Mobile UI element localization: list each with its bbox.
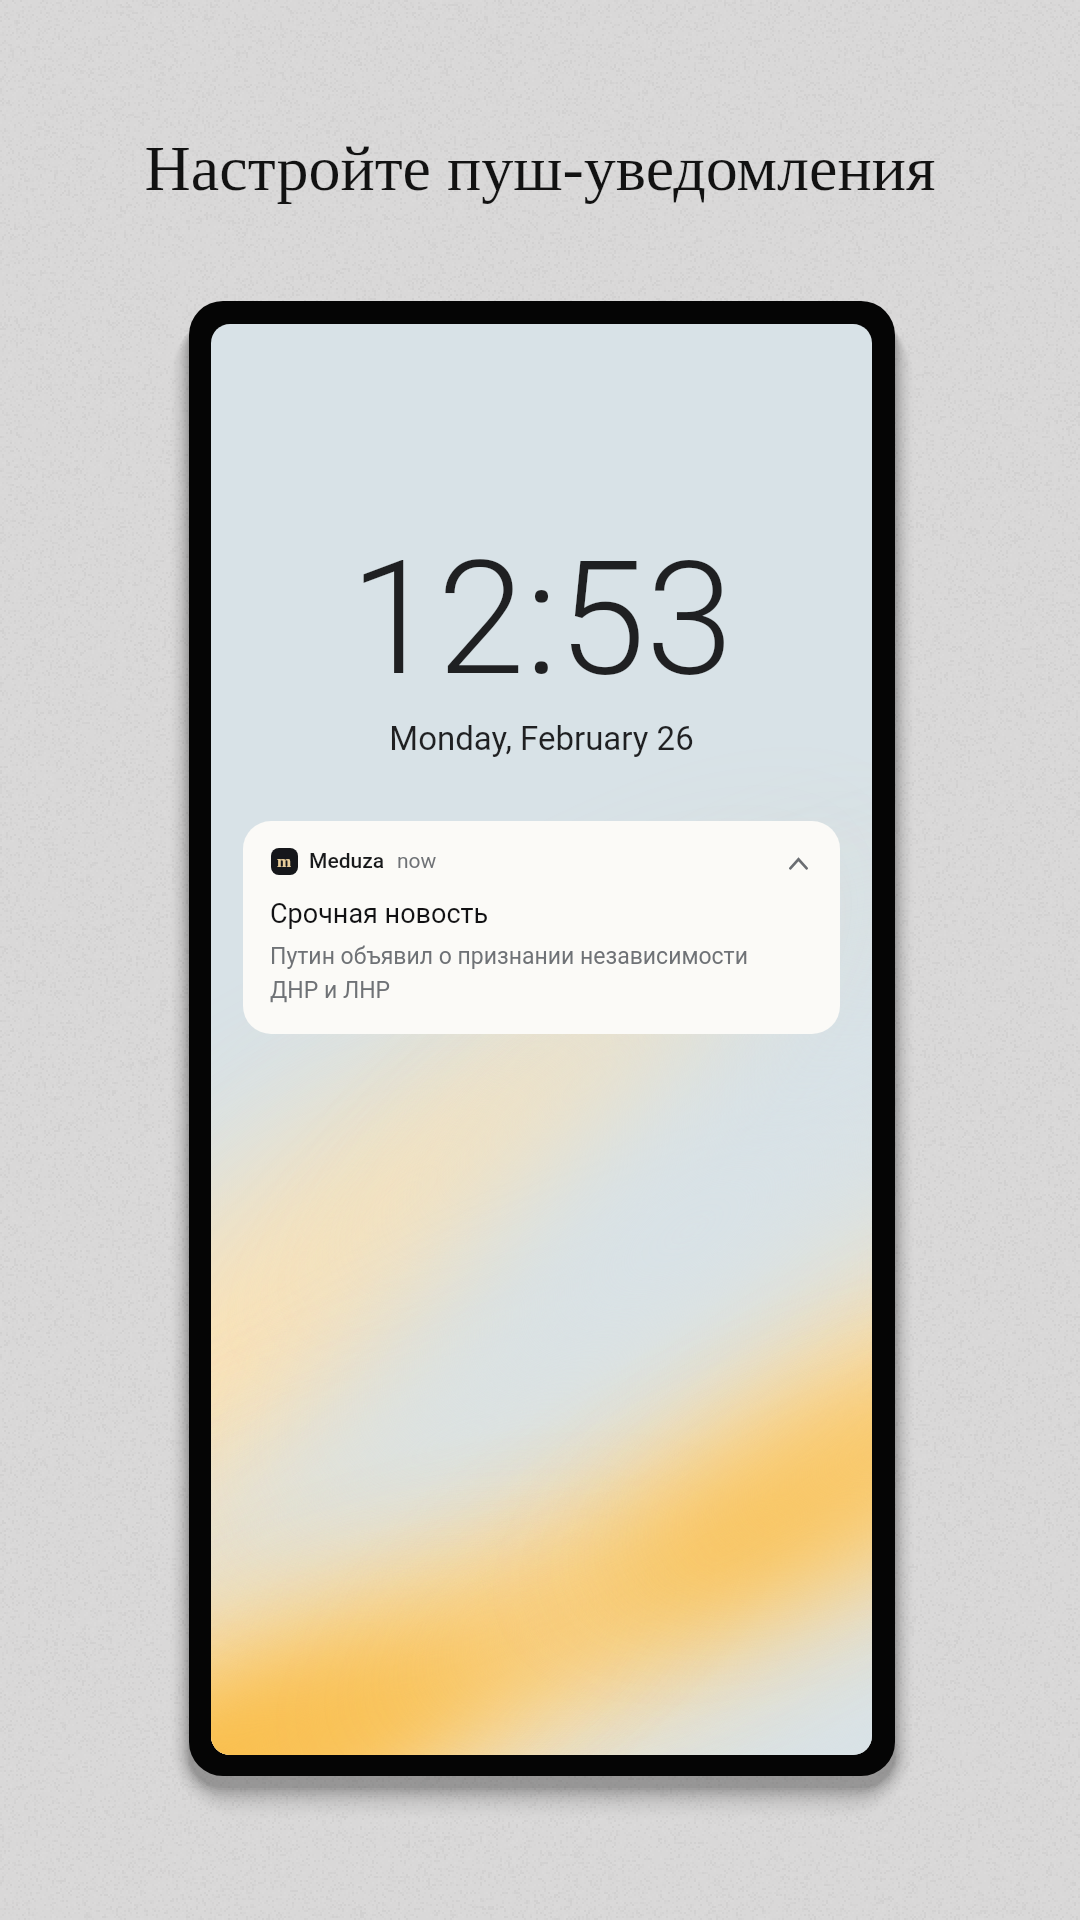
staticText: now: [397, 849, 437, 874]
staticText: Monday, February 26: [211, 719, 872, 758]
button[interactable]: Collapse notification: [781, 847, 815, 881]
staticText: Meduza: [309, 849, 385, 874]
staticText: m: [277, 852, 292, 871]
button[interactable]: m: [243, 821, 840, 1034]
staticText: Срочная новость: [270, 898, 489, 930]
staticText: 12:53: [211, 526, 872, 711]
staticText: Путин объявил о признании независимости …: [270, 943, 790, 1004]
staticText: Настройте пуш-уведомления: [0, 133, 1080, 204]
